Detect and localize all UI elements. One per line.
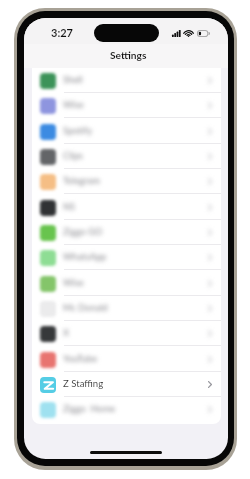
button[interactable]: Telegram (32, 169, 221, 194)
other: Status (172, 30, 210, 37)
staticText: WhatsApp (63, 251, 107, 262)
staticText: Settings (110, 49, 147, 61)
staticText: Ziggo GO (63, 226, 103, 237)
staticText: Wise (63, 99, 84, 110)
button[interactable]: Wise (32, 93, 221, 118)
button[interactable]: NS (32, 195, 221, 220)
button[interactable]: Ziggo Home (32, 397, 221, 422)
button[interactable]: Clips (32, 144, 221, 169)
staticText: Z Staffing (63, 378, 104, 390)
button[interactable]: Spotify (32, 119, 221, 144)
staticText: 3:27 (51, 26, 73, 39)
button[interactable]: Z Staffing (32, 372, 221, 397)
button[interactable]: YouTube (32, 347, 221, 372)
button[interactable]: WhatsApp (32, 245, 221, 270)
button[interactable]: Ziggo GO (32, 220, 221, 245)
staticText: YouTube (63, 353, 98, 364)
staticText: Wise (63, 277, 84, 288)
button[interactable]: Wise (32, 271, 221, 296)
staticText: Telegram (63, 175, 100, 186)
staticText: Spotify (63, 125, 93, 136)
staticText: NS (63, 201, 76, 212)
staticText: Shell (63, 74, 83, 85)
staticText: Clips (63, 150, 83, 161)
staticText: X (63, 327, 70, 338)
button[interactable]: Mc Donald (32, 296, 221, 321)
button[interactable]: Shell (32, 68, 221, 93)
staticText: Ziggo Home (63, 403, 116, 414)
button[interactable]: X (32, 321, 221, 346)
staticText: Mc Donald (63, 302, 108, 313)
